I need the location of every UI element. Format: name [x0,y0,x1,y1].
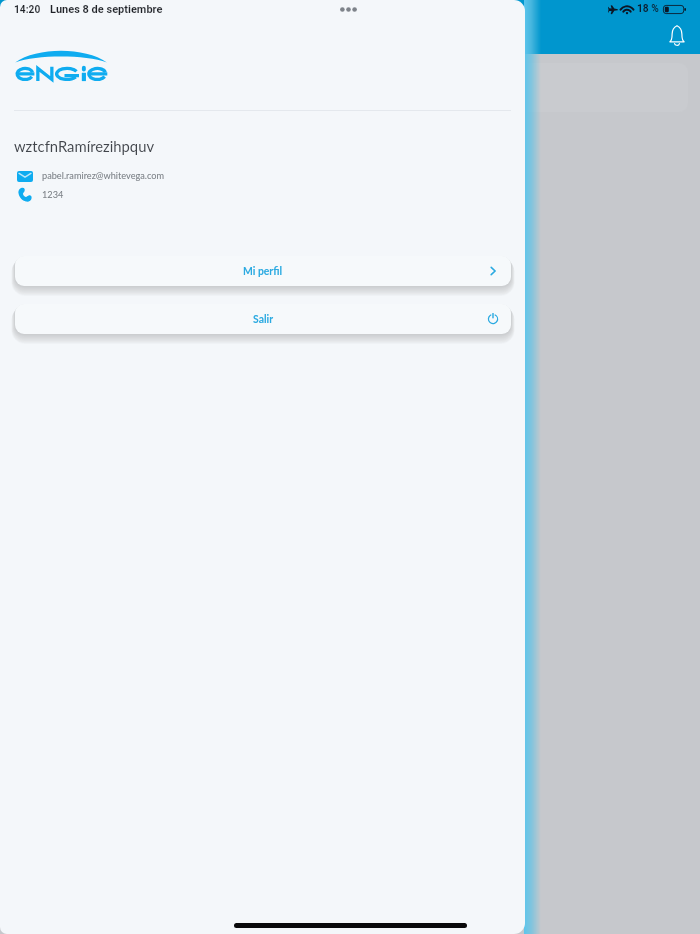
staticText: wztcfnRamírezihpquv [14,137,155,155]
staticText: Salir [253,313,274,325]
staticText: Lunes 8 de septiembre [50,3,163,16]
staticText: pabel.ramirez@whitevega.com [42,170,165,181]
button[interactable]: Mi perfil [15,256,511,286]
button[interactable]: Notifications [661,17,693,49]
button[interactable]: Salir [15,304,511,334]
staticText: 14:20 [14,4,41,16]
staticText: Mi perfil [243,265,283,277]
staticText: 18 % [637,3,659,15]
staticText: 1234 [42,189,64,200]
